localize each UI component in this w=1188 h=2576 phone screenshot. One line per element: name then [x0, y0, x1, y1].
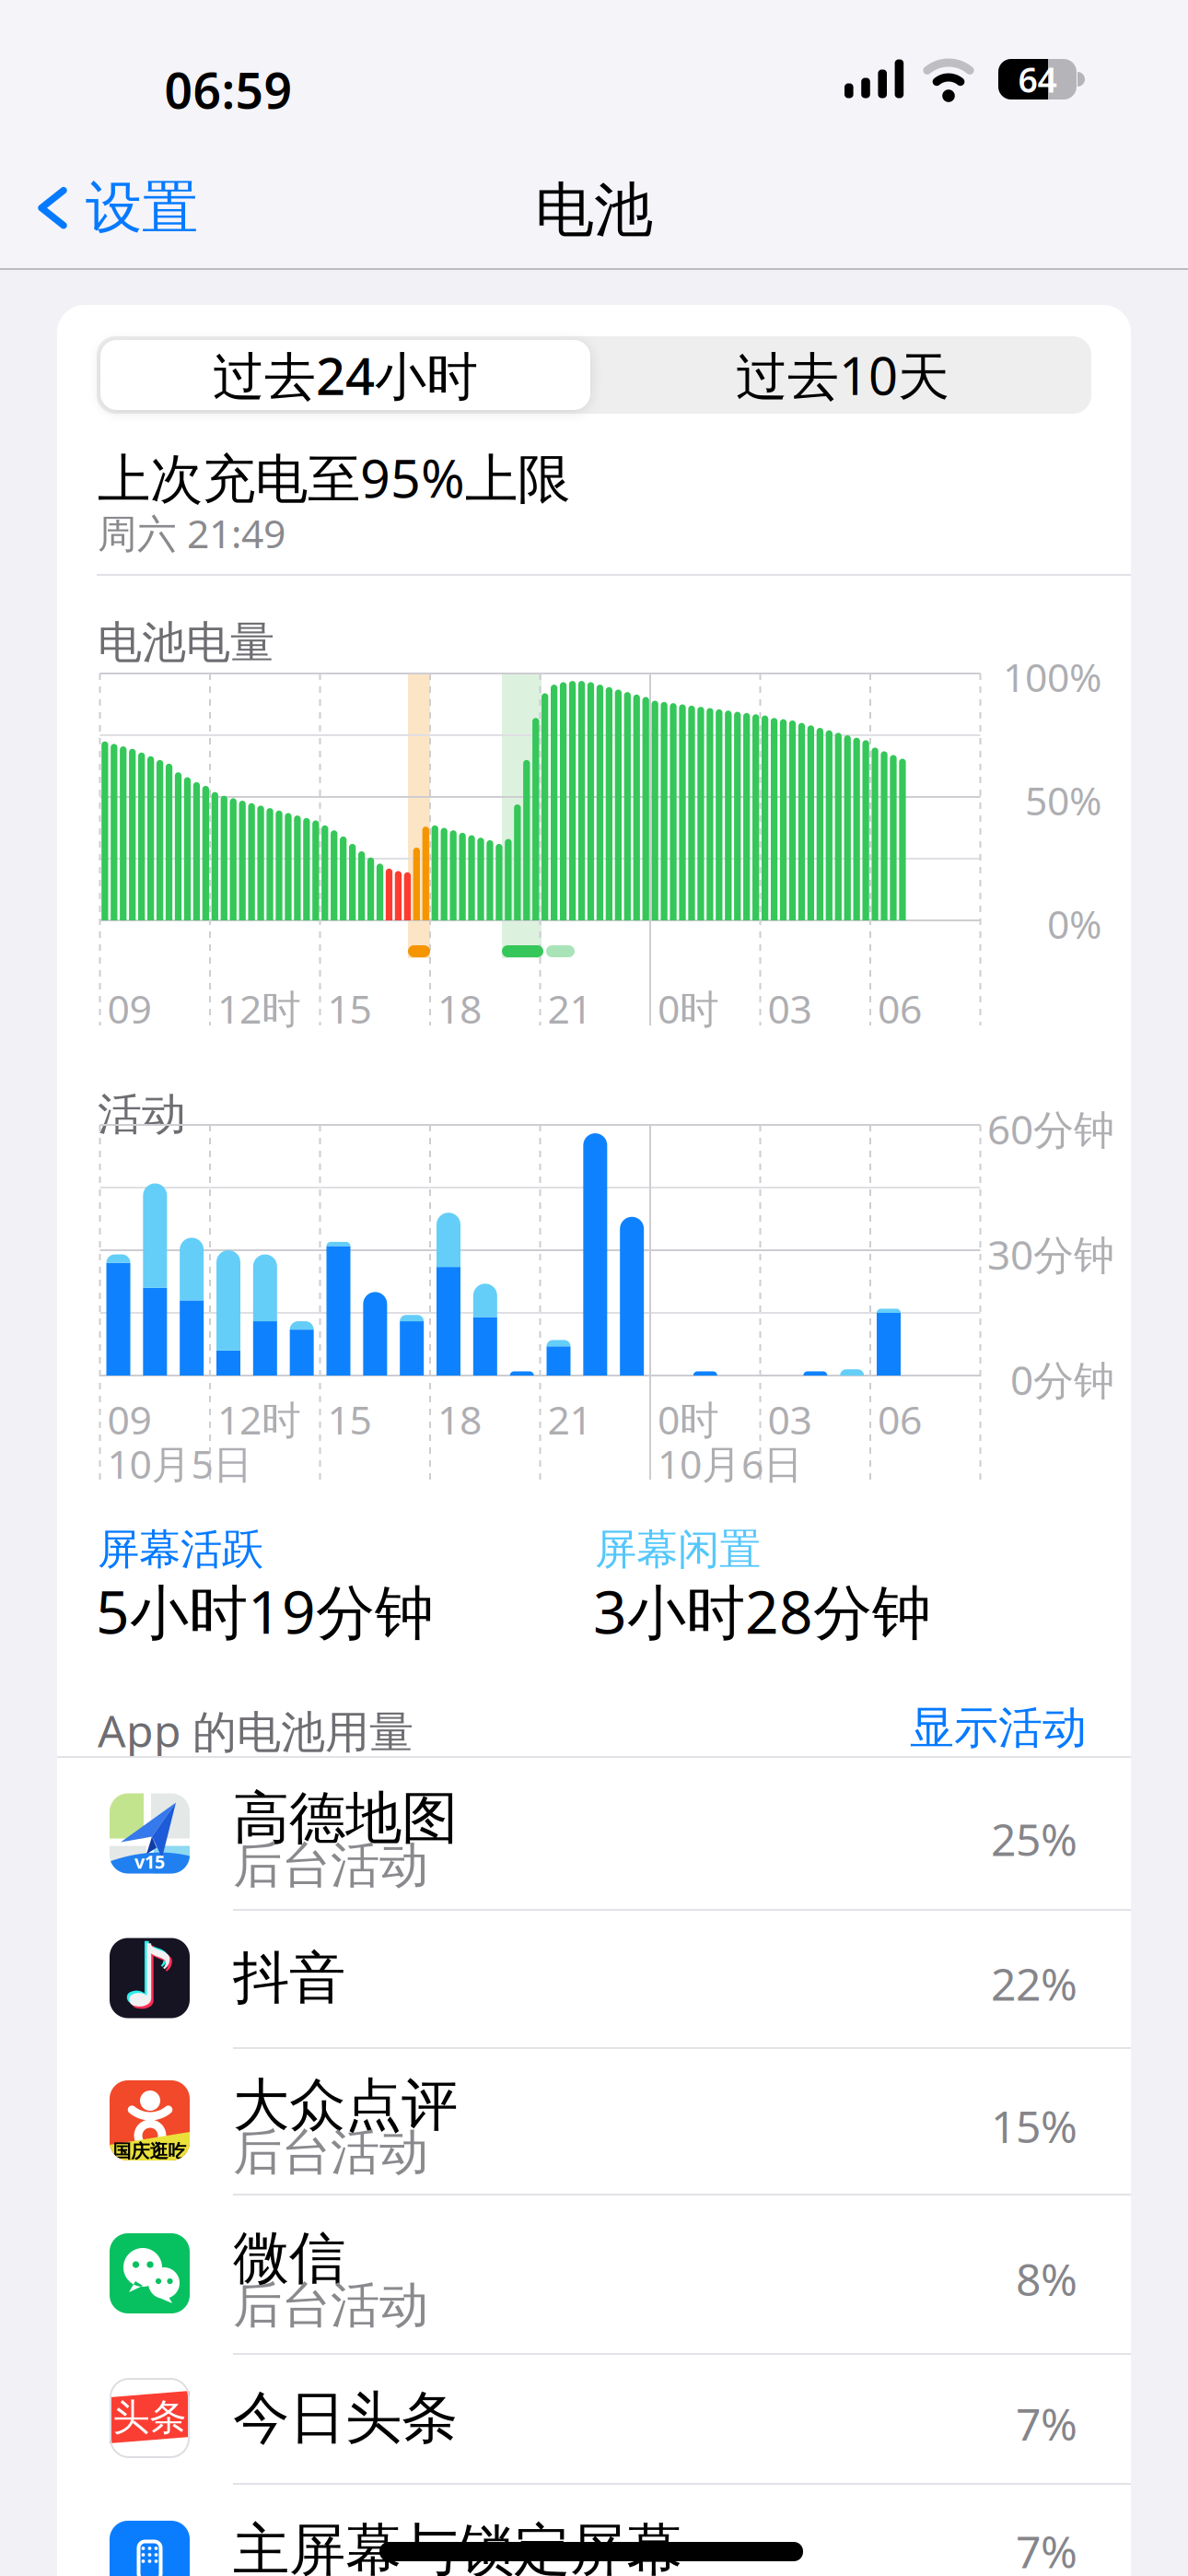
staticText: 10月5日 — [107, 1437, 253, 1489]
staticText: 设置 — [86, 173, 198, 243]
staticText: 03 — [768, 1393, 812, 1445]
staticText: 7% — [1016, 2394, 1077, 2453]
staticText: 上次充电至95%上限 — [98, 442, 570, 512]
staticText: 30分钟 — [987, 1227, 1114, 1281]
staticText: 15 — [327, 982, 372, 1034]
staticText: 18 — [437, 1393, 482, 1445]
staticText: 显示活动 — [910, 1701, 1087, 1755]
staticText: 64 — [1018, 56, 1057, 102]
staticText: 15 — [327, 1393, 372, 1445]
staticText: 10月6日 — [658, 1437, 803, 1489]
staticText: 头条 — [113, 2395, 186, 2440]
staticText: 7% — [1016, 2522, 1077, 2576]
staticText: 0时 — [658, 1393, 719, 1445]
staticText: 12时 — [217, 1393, 301, 1445]
button[interactable]: ♪ — [57, 1909, 1131, 2047]
staticText: 0时 — [658, 982, 719, 1034]
staticText: ♪ — [122, 1927, 177, 2025]
staticText: 25% — [991, 1809, 1077, 1868]
staticText: 06 — [878, 1393, 922, 1445]
button[interactable]: 设置 — [37, 173, 198, 243]
staticText: 8% — [1016, 2249, 1077, 2308]
staticText: 15% — [991, 2096, 1077, 2155]
staticText: 0分钟 — [1010, 1352, 1114, 1406]
staticText: 过去24小时 — [213, 341, 478, 409]
staticText: 18 — [437, 982, 482, 1034]
staticText: 微信 — [233, 2224, 345, 2293]
staticText: 屏幕活跃 — [98, 1524, 263, 1575]
button[interactable]: v15 — [57, 1758, 1131, 1909]
staticText: 03 — [768, 982, 812, 1034]
staticText: 大众点评 — [233, 2071, 458, 2140]
staticText: 今日头条 — [233, 2383, 458, 2453]
staticText: v15 — [134, 1849, 165, 1874]
staticText: 21 — [547, 1393, 592, 1445]
staticText: 高德地图 — [233, 1784, 458, 1853]
staticText: 0% — [1047, 897, 1101, 950]
button[interactable]: 显示活动 — [810, 1701, 1087, 1755]
button[interactable]: 过去24小时 — [100, 340, 590, 410]
staticText: 22% — [991, 1954, 1077, 2013]
staticText: 12时 — [217, 982, 301, 1034]
button[interactable]: 头条 — [57, 2353, 1131, 2483]
button[interactable]: 国庆逛吃 — [57, 2047, 1131, 2194]
staticText: 后台活动 — [233, 1835, 428, 1896]
staticText: 06:59 — [164, 57, 292, 122]
button[interactable]: 过去10天 — [594, 336, 1091, 414]
staticText: 100% — [1003, 650, 1101, 703]
staticText: 60分钟 — [987, 1102, 1114, 1156]
button[interactable]: 主屏幕与锁定屏幕 — [57, 2483, 1131, 2576]
staticText: 周六 21:49 — [98, 507, 285, 559]
staticText: 3小时28分钟 — [593, 1572, 931, 1650]
staticText: 活动 — [98, 1087, 186, 1142]
staticText: 屏幕闲置 — [595, 1524, 761, 1575]
staticText: 抖音 — [233, 1943, 345, 2013]
staticText: 国庆逛吃 — [113, 2140, 186, 2163]
staticText: 21 — [547, 982, 592, 1034]
staticText: 过去10天 — [736, 341, 949, 409]
staticText: App 的电池用量 — [98, 1701, 413, 1760]
staticText: 主屏幕与锁定屏幕 — [233, 2515, 682, 2576]
staticText: 06 — [878, 982, 922, 1034]
staticText: 电池 — [535, 174, 653, 247]
staticText: 09 — [107, 1393, 151, 1445]
staticText: 后台活动 — [233, 2122, 428, 2183]
staticText: 50% — [1025, 774, 1101, 826]
staticText: 后台活动 — [233, 2275, 428, 2336]
staticText: 5小时19分钟 — [96, 1572, 434, 1650]
staticText: ♪ — [124, 1930, 180, 2027]
staticText: 09 — [107, 982, 151, 1034]
staticText: 电池电量 — [98, 615, 274, 670]
button[interactable]: 微信 — [57, 2194, 1131, 2353]
staticText: ♪ — [120, 1925, 175, 2023]
